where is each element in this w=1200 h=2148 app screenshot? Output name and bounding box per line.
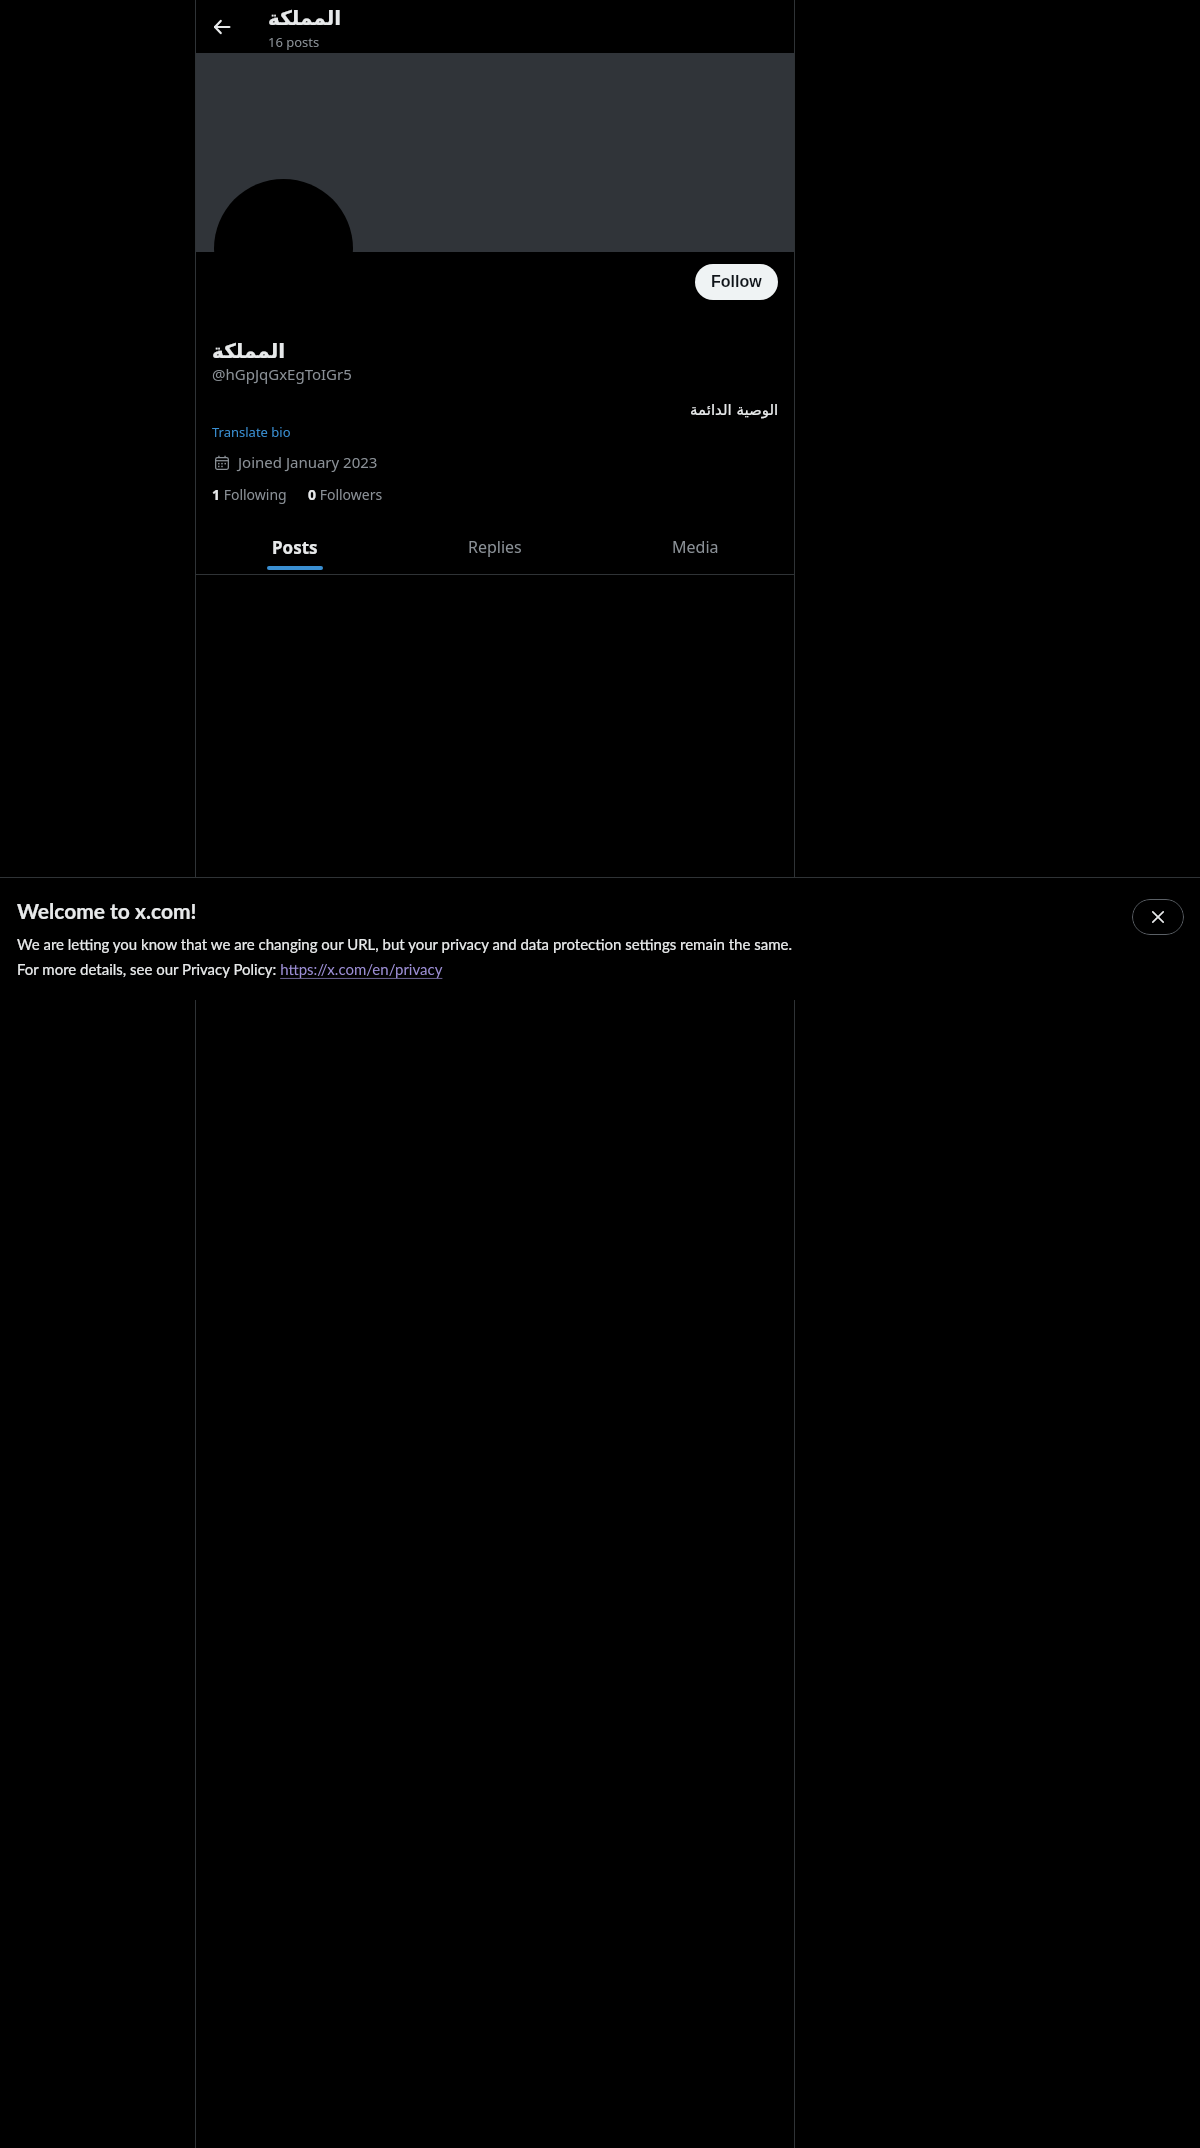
button[interactable]: Close (1132, 899, 1184, 935)
staticText: Welcome to x.com! (17, 898, 197, 923)
staticText: المملكة (212, 339, 286, 362)
button[interactable]: Profile photo (214, 179, 353, 318)
staticText: Follow (711, 273, 762, 291)
staticText: Posts (272, 536, 318, 559)
staticText: @hGpJqGxEgToIGr5 (212, 364, 352, 384)
staticText: Media (672, 536, 719, 558)
button[interactable]: 0 Followers (308, 485, 383, 504)
button[interactable]: Profile banner (195, 53, 795, 252)
staticText: 0 Followers (308, 485, 383, 504)
staticText: We are letting you know that we are chan… (17, 935, 792, 953)
staticText: Translate bio (212, 423, 291, 441)
button[interactable]: Replies (395, 522, 595, 574)
staticText: 1 Following (212, 485, 287, 504)
staticText: الوصية الدائمة (690, 401, 779, 418)
button[interactable]: For more details, see our Privacy Policy… (17, 960, 443, 978)
button[interactable]: 1 Following (212, 485, 287, 504)
button[interactable]: Media (595, 522, 795, 574)
staticText: Joined January 2023 (238, 452, 378, 472)
button[interactable]: Back (202, 7, 242, 47)
staticText: 16 posts (268, 33, 320, 51)
button[interactable]: Translate bio (212, 423, 291, 441)
button[interactable]: Follow (695, 264, 778, 300)
button[interactable]: Posts (195, 522, 395, 574)
staticText: Replies (468, 536, 522, 558)
staticText: For more details, see our Privacy Policy… (17, 960, 443, 978)
staticText: المملكة (268, 6, 342, 29)
